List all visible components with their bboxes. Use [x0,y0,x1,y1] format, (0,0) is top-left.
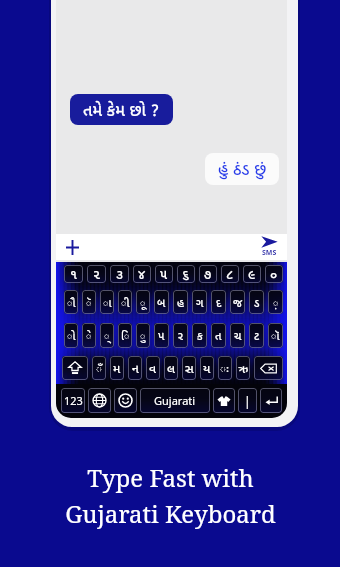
staticText: ત [215,328,222,343]
staticText: ૦ [270,265,278,283]
button[interactable]: લ [164,356,178,380]
button[interactable]: ર [173,323,188,348]
staticText: બ [157,295,166,310]
staticText: ૬ [182,265,190,283]
button[interactable]: ૭ [199,265,217,283]
button[interactable]: ગ [192,290,207,314]
button[interactable]: | [238,388,257,413]
button[interactable]: ી [118,290,132,314]
staticText: ૂ [140,295,146,310]
button[interactable]: સ [182,356,196,380]
staticText: ા [103,295,112,310]
button[interactable]: ુ [136,323,150,348]
button[interactable]: પ [154,323,169,348]
button[interactable]: Change language [88,388,111,413]
staticText: ર [178,328,183,343]
staticText: ૩ [116,265,124,283]
button[interactable]: Themes [213,388,235,413]
button[interactable]: ા [100,290,114,314]
staticText: Type Fast with [87,461,254,494]
button[interactable]: ઃ [218,356,232,380]
button[interactable]: ૨ [87,265,106,283]
other: Themes [217,394,231,408]
button[interactable]: બ [154,290,169,314]
button[interactable]: ૯ [243,265,261,283]
staticText: જ [233,295,243,310]
staticText: હ [177,295,185,310]
button[interactable]: ૅ [82,290,96,314]
button[interactable]: Shift [62,356,88,380]
button[interactable]: ૩ [110,265,129,283]
staticText: ે [86,328,92,343]
button[interactable]: વ [146,356,160,380]
button[interactable]: ે [82,323,96,348]
button[interactable]: Emoji [114,388,137,413]
staticText: ૪ [138,265,146,283]
button[interactable]: ૌ [64,290,78,314]
other: Backspace [260,360,277,377]
button[interactable]: Gujarati [140,388,210,413]
button[interactable]: ૪ [133,265,151,283]
staticText: પ [158,328,165,343]
button[interactable]: િ [118,323,132,348]
staticText: ૧ [70,265,78,283]
staticText: ી [121,295,130,310]
button[interactable]: ડ [249,290,264,314]
button[interactable]: ૫ [155,265,173,283]
staticText: ચ [234,328,242,343]
button[interactable]: ટ [249,323,264,348]
button[interactable]: ઁ [92,356,106,380]
staticText: SMS [262,248,277,258]
button[interactable]: ઋ [236,356,250,380]
staticText: ૮ [226,265,234,283]
staticText: ૅ [86,295,92,310]
staticText: ુ [140,328,146,343]
other: Emoji [118,393,133,408]
staticText: ડ [254,295,260,310]
staticText: ઋ [238,360,249,376]
button[interactable]: ચ [230,323,245,348]
button[interactable]: ૉ [268,323,283,348]
button[interactable]: Enter [260,388,282,413]
button[interactable]: ત [211,323,226,348]
staticText: ક [197,328,203,343]
button[interactable]: Add attachment [66,240,79,255]
button[interactable]: Send SMS [261,236,278,258]
staticText: Gujarati Keyboard [65,497,276,530]
button[interactable]: તમે કેમ છો ? [70,94,173,125]
staticText: ઃ [220,360,230,376]
staticText: વ [149,360,157,376]
staticText: મ [113,360,121,376]
button[interactable]: ઼ [268,290,283,314]
button[interactable]: ્ [100,323,114,348]
staticText: તમે કેમ છો ? [83,99,160,121]
button[interactable]: ૦ [265,265,283,283]
staticText: ૉ [271,328,280,343]
staticText: Gujarati [154,393,196,408]
staticText: ૨ [93,265,101,283]
staticText: ૫ [160,265,168,283]
button[interactable]: 123 [61,388,85,413]
button[interactable]: ય [200,356,214,380]
button[interactable]: Backspace [254,356,283,380]
staticText: | [244,393,251,409]
staticText: ન [132,360,139,376]
button[interactable]: મ [110,356,124,380]
button[interactable]: ૬ [177,265,195,283]
button[interactable]: હ [173,290,188,314]
staticText: ો [67,328,76,343]
staticText: ્ [104,328,110,343]
button[interactable]: જ [230,290,245,314]
staticText: ગ [196,295,204,310]
other: Change language [92,393,107,408]
button[interactable]: ો [64,323,78,348]
button[interactable]: ૮ [221,265,239,283]
button[interactable]: ૧ [64,265,83,283]
staticText: ૭ [204,265,212,283]
staticText: ૌ [67,295,76,310]
button[interactable]: ક [192,323,207,348]
button[interactable]: ન [128,356,142,380]
button[interactable]: ૂ [136,290,150,314]
button[interactable]: દ [211,290,226,314]
button[interactable]: હું ઠંડ છું [205,153,279,185]
